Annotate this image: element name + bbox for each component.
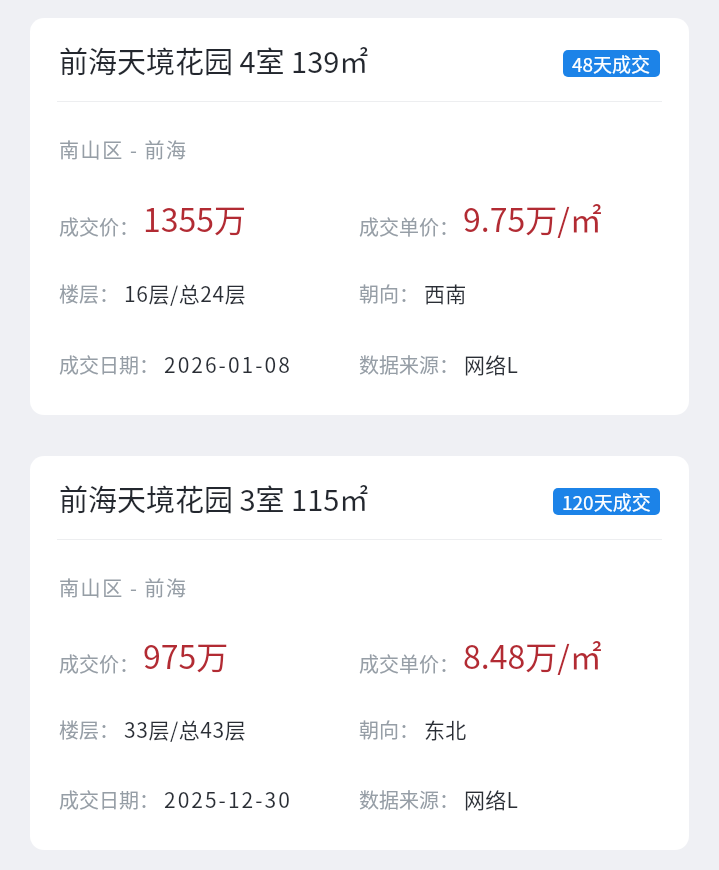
staticText: 8.48万/㎡ [463,632,602,678]
staticText: 9.75万/㎡ [463,195,602,241]
staticText: 西南 [424,278,467,308]
staticText: 数据来源： [359,350,459,379]
button[interactable]: 前海天境花园 3室 115㎡ [30,456,689,850]
staticText: 1355万 [143,195,247,241]
button[interactable]: 48天成交 [563,50,660,77]
staticText: 48天成交 [572,50,651,77]
staticText: 120天成交 [562,488,651,515]
staticText: 前海天境花园 4室 139㎡ [59,39,369,81]
staticText: 33层/总43层 [124,714,247,744]
staticText: 成交单价： [359,649,459,678]
staticText: 成交价： [59,212,139,241]
staticText: 楼层： [59,279,119,308]
staticText: 成交日期： [59,350,159,379]
staticText: 南山区 - 前海 [59,573,188,602]
button[interactable]: 120天成交 [553,488,660,515]
staticText: 网络L [464,349,519,379]
staticText: 网络L [464,784,519,814]
staticText: 2025-12-30 [164,784,292,814]
staticText: 朝向： [359,279,419,308]
staticText: 楼层： [59,715,119,744]
button[interactable]: 前海天境花园 4室 139㎡ [30,18,689,415]
staticText: 东北 [424,714,467,744]
staticText: 975万 [143,632,229,678]
staticText: 南山区 - 前海 [59,135,188,164]
staticText: 2026-01-08 [164,349,292,379]
staticText: 成交单价： [359,212,459,241]
staticText: 16层/总24层 [124,278,247,308]
staticText: 前海天境花园 3室 115㎡ [59,477,369,519]
staticText: 成交价： [59,649,139,678]
staticText: 成交日期： [59,785,159,814]
staticText: 数据来源： [359,785,459,814]
staticText: 朝向： [359,715,419,744]
